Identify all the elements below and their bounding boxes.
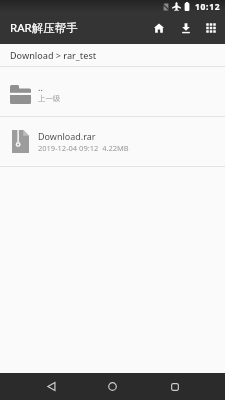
- staticText: ..: [38, 81, 43, 93]
- button[interactable]: ..: [0, 67, 225, 116]
- staticText: 上一级: [38, 94, 61, 103]
- button[interactable]: [180, 22, 192, 34]
- staticText: Download > rar_test: [10, 49, 97, 61]
- staticText: Download.rar: [38, 130, 96, 142]
- button[interactable]: Download.rar: [0, 117, 225, 166]
- button[interactable]: Download > rar_test: [0, 44, 225, 66]
- button[interactable]: [205, 22, 217, 34]
- staticText: 2019-12-04 09:12 4.22MB: [38, 143, 129, 153]
- staticText: RAR解压帮手: [10, 20, 78, 36]
- button[interactable]: [0, 373, 75, 400]
- button[interactable]: [153, 22, 165, 34]
- button[interactable]: [150, 373, 225, 400]
- staticText: 10:12: [195, 1, 221, 13]
- button[interactable]: [75, 373, 150, 400]
